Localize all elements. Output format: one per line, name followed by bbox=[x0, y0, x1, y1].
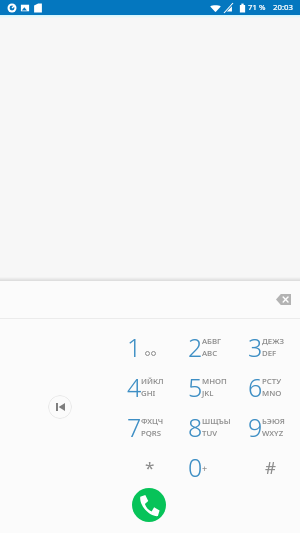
staticText: + bbox=[202, 462, 208, 474]
staticText: МНОП bbox=[202, 376, 227, 387]
staticText: 3 bbox=[248, 330, 263, 364]
staticText: 2 bbox=[188, 330, 203, 364]
staticText: JKL bbox=[202, 388, 214, 399]
staticText: 7 bbox=[127, 410, 142, 444]
staticText: 9 bbox=[248, 410, 263, 444]
button[interactable]: Backspace bbox=[268, 284, 298, 314]
staticText: DEF bbox=[262, 348, 277, 359]
button[interactable]: 5 bbox=[180, 367, 241, 407]
staticText: 8 bbox=[188, 410, 203, 444]
staticText: 20:03 bbox=[273, 2, 293, 13]
staticText: ФХЦЧ bbox=[141, 416, 164, 427]
staticText: ИЙКЛ bbox=[141, 376, 164, 387]
staticText: 4 bbox=[127, 370, 142, 404]
staticText: MNO bbox=[262, 388, 282, 399]
staticText: ШЩЪЫ bbox=[202, 416, 231, 427]
button[interactable]: * bbox=[119, 447, 180, 487]
staticText: 5 bbox=[188, 370, 203, 404]
staticText: # bbox=[265, 456, 276, 479]
button[interactable]: 3 bbox=[240, 327, 300, 367]
staticText: * bbox=[145, 456, 155, 479]
staticText: ДЕЖЗ bbox=[262, 336, 284, 347]
staticText: 1 bbox=[127, 330, 142, 364]
staticText: ABC bbox=[202, 348, 218, 359]
staticText: PQRS bbox=[141, 428, 162, 439]
button[interactable]: 6 bbox=[240, 367, 300, 407]
button[interactable]: 9 bbox=[240, 407, 300, 447]
staticText: ЬЭЮЯ bbox=[262, 416, 285, 427]
button[interactable]: 7 bbox=[119, 407, 180, 447]
staticText: GHI bbox=[141, 388, 156, 399]
staticText: 71 % bbox=[248, 2, 266, 13]
button[interactable]: 8 bbox=[180, 407, 241, 447]
button[interactable]: 1 bbox=[119, 327, 180, 367]
button[interactable]: # bbox=[240, 447, 300, 487]
staticText: 6 bbox=[248, 370, 263, 404]
staticText: 0 bbox=[188, 450, 203, 484]
button[interactable]: 4 bbox=[119, 367, 180, 407]
staticText: АБВГ bbox=[202, 336, 222, 347]
button[interactable]: Call bbox=[132, 488, 166, 522]
button[interactable]: 0 bbox=[180, 447, 241, 487]
button[interactable]: 2 bbox=[180, 327, 241, 367]
staticText: РСТУ bbox=[262, 376, 282, 387]
staticText: TUV bbox=[202, 428, 217, 439]
button[interactable]: Previous bbox=[48, 395, 72, 419]
staticText: WXYZ bbox=[262, 428, 284, 439]
